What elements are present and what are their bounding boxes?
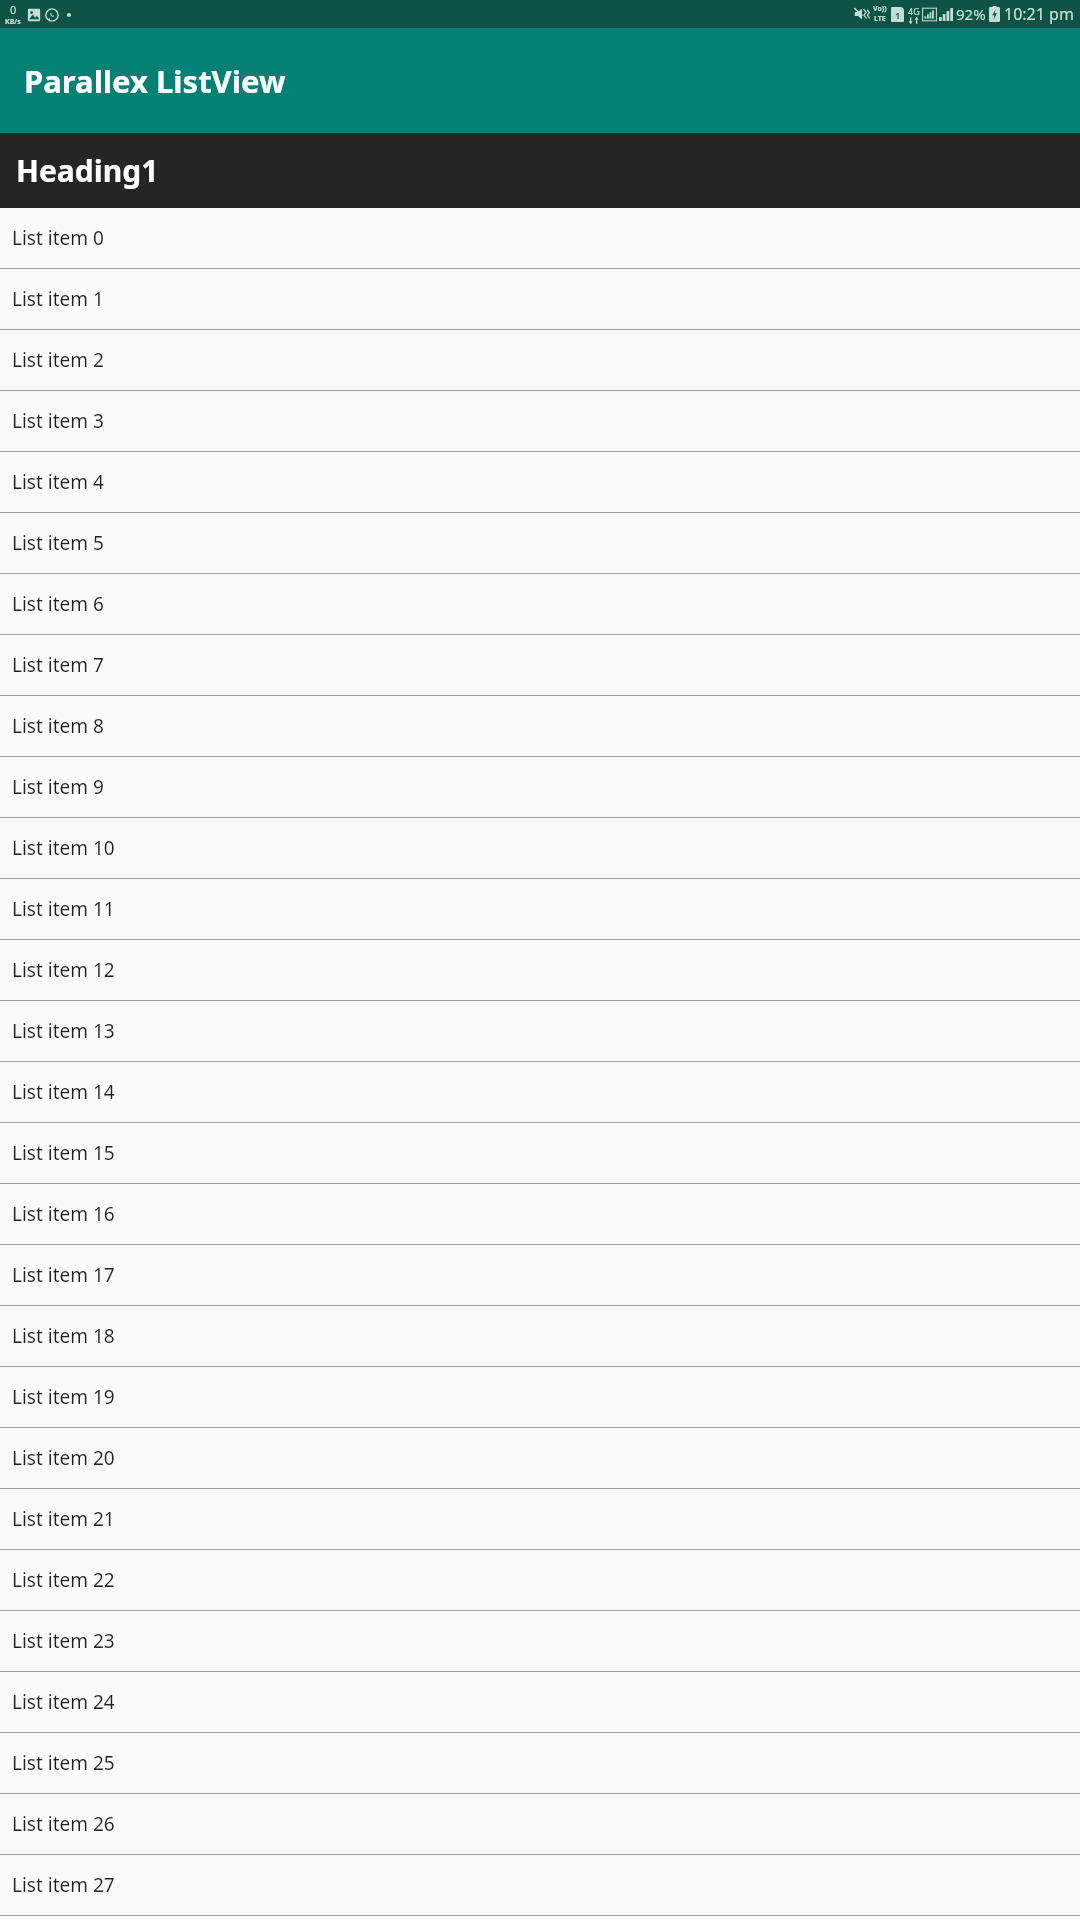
staticText: List item 2: [12, 347, 104, 373]
staticText: List item 8: [12, 713, 104, 739]
staticText: List item 4: [12, 469, 104, 495]
staticText: KB/s: [5, 17, 21, 27]
button[interactable]: List item 13: [0, 1001, 1080, 1062]
button[interactable]: List item 19: [0, 1367, 1080, 1428]
staticText: Parallex ListView: [24, 60, 286, 102]
button[interactable]: List item 23: [0, 1611, 1080, 1672]
staticText: List item 19: [12, 1384, 115, 1410]
button[interactable]: List item 24: [0, 1672, 1080, 1733]
button[interactable]: List item 12: [0, 940, 1080, 1001]
staticText: 92%: [956, 4, 986, 24]
staticText: List item 10: [12, 835, 115, 861]
staticText: List item 25: [12, 1750, 115, 1776]
button[interactable]: List item 15: [0, 1123, 1080, 1184]
staticText: List item 0: [12, 225, 104, 251]
staticText: List item 26: [12, 1811, 115, 1837]
staticText: List item 22: [12, 1567, 115, 1593]
staticText: List item 27: [12, 1872, 115, 1898]
button[interactable]: List item 27: [0, 1855, 1080, 1916]
staticText: Heading1: [16, 150, 159, 191]
button[interactable]: List item 6: [0, 574, 1080, 635]
staticText: List item 12: [12, 957, 115, 983]
staticText: List item 18: [12, 1323, 115, 1349]
staticText: List item 13: [12, 1018, 115, 1044]
button[interactable]: List item 3: [0, 391, 1080, 452]
staticText: 10:21 pm: [1004, 3, 1074, 25]
staticText: List item 14: [12, 1079, 115, 1105]
staticText: LTE: [874, 14, 886, 24]
button[interactable]: List item 9: [0, 757, 1080, 818]
button[interactable]: List item 18: [0, 1306, 1080, 1367]
staticText: List item 6: [12, 591, 104, 617]
button[interactable]: List item 20: [0, 1428, 1080, 1489]
button[interactable]: List item 10: [0, 818, 1080, 879]
staticText: 1: [895, 9, 901, 21]
button[interactable]: List item 4: [0, 452, 1080, 513]
staticText: List item 3: [12, 408, 104, 434]
button[interactable]: List item 21: [0, 1489, 1080, 1550]
staticText: Vo)): [873, 4, 887, 14]
button[interactable]: List item 5: [0, 513, 1080, 574]
staticText: List item 9: [12, 774, 104, 800]
button[interactable]: List item 16: [0, 1184, 1080, 1245]
button[interactable]: List item 0: [0, 208, 1080, 269]
staticText: List item 20: [12, 1445, 115, 1471]
staticText: List item 15: [12, 1140, 115, 1166]
staticText: List item 7: [12, 652, 104, 678]
staticText: List item 16: [12, 1201, 115, 1227]
button[interactable]: List item 11: [0, 879, 1080, 940]
staticText: List item 5: [12, 530, 104, 556]
staticText: List item 24: [12, 1689, 115, 1715]
button[interactable]: List item 26: [0, 1794, 1080, 1855]
staticText: List item 11: [12, 896, 115, 922]
button[interactable]: List item 2: [0, 330, 1080, 391]
button[interactable]: List item 8: [0, 696, 1080, 757]
button[interactable]: List item 1: [0, 269, 1080, 330]
staticText: List item 23: [12, 1628, 115, 1654]
button[interactable]: List item 22: [0, 1550, 1080, 1611]
staticText: List item 21: [12, 1506, 115, 1532]
staticText: List item 17: [12, 1262, 115, 1288]
staticText: List item 1: [12, 286, 104, 312]
button[interactable]: List item 14: [0, 1062, 1080, 1123]
button[interactable]: List item 7: [0, 635, 1080, 696]
staticText: 4G: [908, 5, 920, 17]
button[interactable]: List item 25: [0, 1733, 1080, 1794]
button[interactable]: List item 17: [0, 1245, 1080, 1306]
staticText: 0: [10, 2, 17, 17]
